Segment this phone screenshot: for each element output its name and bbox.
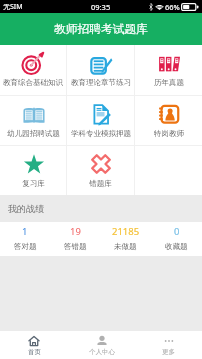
button[interactable]: 首页 <box>0 331 68 359</box>
staticText: 21185 <box>112 225 140 238</box>
button[interactable]: 教育综合基础知识 <box>0 45 66 95</box>
staticText: 19 <box>70 225 81 238</box>
staticText: 更多 <box>162 348 175 356</box>
button[interactable]: 21185 <box>100 222 151 256</box>
button[interactable]: 1 <box>0 222 50 256</box>
button[interactable]: 更多 <box>135 331 202 359</box>
button[interactable]: 19 <box>50 222 100 256</box>
staticText: 答对题 <box>14 242 37 251</box>
staticText: 66% <box>165 2 180 12</box>
staticText: 我的战绩 <box>8 203 44 214</box>
staticText: 复习库 <box>22 179 45 188</box>
button[interactable]: 错题库 <box>67 146 134 195</box>
staticText: 1 <box>22 225 28 238</box>
staticText: 0 <box>174 225 180 238</box>
button[interactable]: 历年真题 <box>135 45 202 95</box>
staticText: 答错题 <box>64 242 87 251</box>
staticText: 收藏题 <box>165 242 188 251</box>
button[interactable]: 幼儿园招聘试题 <box>0 96 66 145</box>
button[interactable]: 特岗教师 <box>135 96 202 145</box>
staticText: 特岗教师 <box>154 129 184 138</box>
button[interactable]: 教育理论章节练习 <box>67 45 134 95</box>
staticText: 教育理论章节练习 <box>71 78 131 87</box>
staticText: 历年真题 <box>154 78 184 87</box>
button[interactable]: 学科专业模拟押题 <box>67 96 134 145</box>
button[interactable]: 0 <box>151 222 202 256</box>
staticText: 未做题 <box>114 242 137 251</box>
staticText: 幼儿园招聘试题 <box>7 129 60 138</box>
staticText: 学科专业模拟押题 <box>71 129 131 138</box>
staticText: 首页 <box>28 348 41 356</box>
staticText: 个人中心 <box>89 348 115 356</box>
button[interactable]: 复习库 <box>0 146 66 195</box>
staticText: 教师招聘考试题库 <box>54 22 148 37</box>
staticText: 无SIM <box>3 2 23 12</box>
staticText: 教育综合基础知识 <box>3 78 63 87</box>
button[interactable]: 个人中心 <box>68 331 135 359</box>
staticText: 09:35 <box>91 2 111 12</box>
staticText: 错题库 <box>89 179 112 188</box>
